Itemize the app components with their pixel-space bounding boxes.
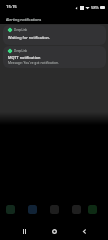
staticText: 15:15: [6, 4, 17, 10]
button[interactable]: Recent apps: [14, 222, 34, 240]
button[interactable]: Back: [75, 222, 94, 240]
staticText: Alerting notifications: [6, 17, 42, 22]
staticText: Message: You've got notification.: [8, 60, 59, 64]
button[interactable]: Home: [45, 222, 64, 240]
staticText: DeepLink: [14, 28, 28, 32]
button[interactable]: DeepLink: [3, 46, 106, 68]
button[interactable]: DeepLink: [3, 25, 106, 45]
staticText: MQTT notification: [8, 55, 41, 60]
staticText: 58%: [91, 5, 99, 10]
staticText: Waiting for notification.: [8, 35, 50, 40]
staticText: DeepLink: [14, 49, 28, 53]
